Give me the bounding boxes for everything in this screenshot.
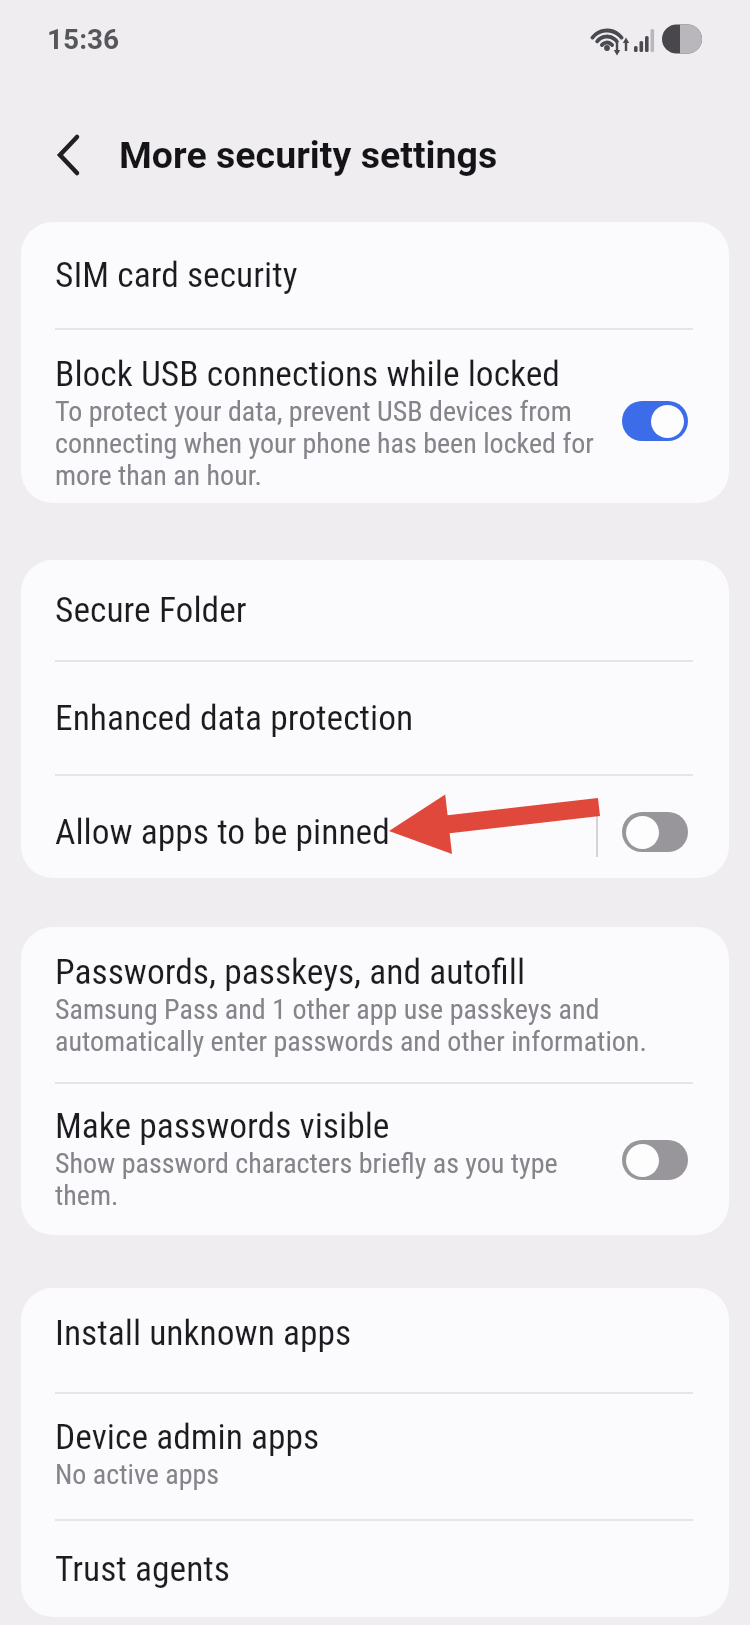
button[interactable]: Block USB connections while locked bbox=[21, 330, 729, 503]
staticText: Device admin apps bbox=[55, 1416, 320, 1458]
button[interactable]: Allow apps to be pinned bbox=[21, 776, 729, 878]
staticText: SIM card security bbox=[55, 254, 298, 296]
button[interactable]: Enhanced data protection bbox=[21, 662, 729, 774]
staticText: No active apps bbox=[55, 1458, 220, 1491]
staticText: More security settings bbox=[119, 133, 498, 177]
button[interactable]: Trust agents bbox=[21, 1521, 729, 1617]
staticText: Block USB connections while locked bbox=[55, 353, 560, 395]
staticText: Install unknown apps bbox=[55, 1312, 352, 1354]
button[interactable] bbox=[622, 812, 688, 852]
staticText: Allow apps to be pinned bbox=[55, 811, 390, 853]
staticText: To protect your data, prevent USB device… bbox=[55, 395, 594, 492]
button[interactable] bbox=[622, 401, 688, 441]
button[interactable]: Secure Folder bbox=[21, 560, 729, 660]
button[interactable]: Install unknown apps bbox=[21, 1288, 729, 1392]
button[interactable]: Device admin apps bbox=[21, 1394, 729, 1519]
staticText: Passwords, passkeys, and autofill bbox=[55, 951, 526, 993]
button[interactable]: Make passwords visible bbox=[21, 1084, 729, 1235]
staticText: Show password characters briefly as you … bbox=[55, 1147, 558, 1212]
button[interactable]: Passwords, passkeys, and autofill bbox=[21, 927, 729, 1082]
staticText: Enhanced data protection bbox=[55, 697, 414, 739]
staticText: Samsung Pass and 1 other app use passkey… bbox=[55, 993, 647, 1058]
staticText: Trust agents bbox=[55, 1548, 231, 1590]
staticText: Secure Folder bbox=[55, 589, 247, 631]
button[interactable] bbox=[44, 131, 92, 179]
button[interactable] bbox=[622, 1140, 688, 1180]
button[interactable]: SIM card security bbox=[21, 222, 729, 328]
staticText: 15:36 bbox=[47, 23, 120, 56]
staticText: Make passwords visible bbox=[55, 1105, 390, 1147]
